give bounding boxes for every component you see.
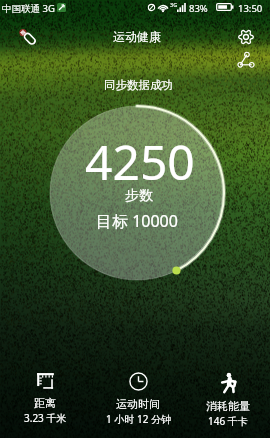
staticText: 13:50	[238, 2, 263, 15]
button[interactable]: Settings	[238, 29, 254, 45]
staticText: 4250	[85, 129, 195, 194]
button[interactable]: Share	[238, 52, 254, 68]
staticText: 中国联通 3G	[2, 2, 55, 15]
staticText: 运动时间	[116, 397, 160, 411]
staticText: 1 小时 12 分钟	[106, 412, 171, 426]
staticText: 3.23 千米	[24, 411, 67, 425]
button[interactable]: 消耗能量	[186, 372, 270, 428]
staticText: 同步数据成功	[104, 78, 173, 92]
staticText: 步数	[125, 187, 153, 205]
staticText: 83%	[189, 2, 208, 15]
staticText: 距离	[34, 396, 56, 410]
button[interactable]: 运动时间	[96, 372, 180, 426]
button[interactable]: Achievements	[17, 26, 39, 48]
staticText: 目标 10000	[96, 210, 178, 232]
staticText: 146 千卡	[208, 414, 248, 428]
staticText: 运动健康	[113, 29, 161, 44]
staticText: 消耗能量	[206, 399, 250, 413]
staticText: 3G	[170, 1, 178, 8]
button[interactable]: 距离	[3, 372, 87, 425]
